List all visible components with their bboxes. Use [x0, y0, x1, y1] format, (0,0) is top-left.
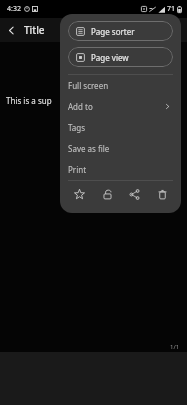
staticText: 4:32 [7, 4, 21, 14]
button[interactable]: Tags [68, 117, 173, 138]
staticText: Tags [68, 122, 173, 133]
button[interactable]: Full screen [68, 75, 173, 96]
staticText: Save as file [68, 143, 173, 154]
button[interactable]: Favorite [68, 183, 90, 205]
button[interactable]: Lock [96, 183, 118, 205]
button[interactable]: Back [0, 19, 22, 41]
staticText: 1/1 [170, 343, 180, 351]
staticText: Page sorter [91, 26, 135, 37]
button[interactable]: Page view [68, 47, 173, 67]
button[interactable]: Add to [68, 96, 173, 117]
staticText: This is a sup [6, 95, 52, 106]
staticText: Page view [91, 52, 129, 63]
staticText: Title [24, 23, 45, 37]
staticText: Full screen [68, 80, 173, 91]
staticText: Add to [68, 101, 164, 112]
staticText: Print [68, 164, 173, 175]
button[interactable]: Save as file [68, 138, 173, 159]
button[interactable]: Page sorter [68, 21, 173, 41]
staticText: 71 [167, 4, 176, 14]
button[interactable]: Delete [151, 183, 173, 205]
button[interactable]: Share [123, 183, 145, 205]
button[interactable]: Print [68, 159, 173, 180]
